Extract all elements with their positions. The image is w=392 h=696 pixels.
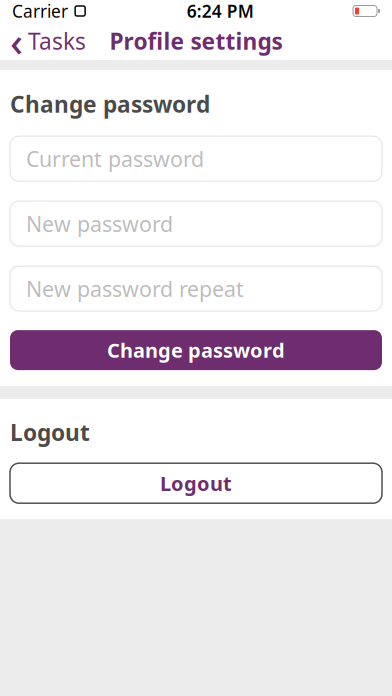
staticText: 6:24 PM	[187, 0, 254, 22]
staticText: Tasks	[28, 26, 86, 56]
button[interactable]: Logout	[10, 463, 382, 503]
staticText: New password repeat	[26, 274, 244, 303]
staticText: Logout	[160, 470, 232, 496]
staticText: ‹	[10, 14, 23, 67]
staticText: New password	[26, 209, 173, 238]
button[interactable]: Change password	[10, 330, 382, 370]
staticText: Carrier	[12, 0, 68, 22]
staticText: Profile settings	[109, 26, 282, 56]
button[interactable]: ‹	[0, 10, 86, 71]
staticText: Change password	[107, 337, 285, 363]
staticText: Change password	[10, 89, 210, 119]
staticText: Current password	[26, 144, 204, 173]
staticText: Logout	[10, 417, 90, 447]
